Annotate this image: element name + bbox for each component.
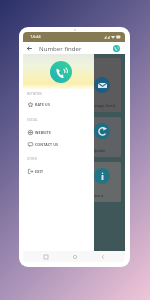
button[interactable]: Recents — [40, 251, 51, 262]
staticText: 14:44 — [30, 34, 41, 40]
button[interactable]: Home — [69, 251, 80, 262]
staticText: About — [92, 193, 104, 198]
staticText: OTHER — [27, 157, 38, 161]
staticText: Number finder — [39, 44, 82, 52]
button[interactable]: CONTACT US — [23, 138, 94, 150]
staticText: RATE US — [35, 102, 50, 107]
button[interactable]: Back — [23, 42, 35, 54]
staticText: EXIT — [35, 169, 44, 174]
staticText: Update — [92, 148, 106, 153]
staticText: NETWORK — [27, 92, 42, 96]
staticText: WEBSITE — [35, 130, 51, 135]
button[interactable]: Call — [113, 45, 120, 52]
staticText: essage Send — [92, 103, 115, 108]
button[interactable]: Update — [91, 117, 121, 157]
button[interactable]: essage Send — [91, 58, 121, 112]
button[interactable]: EXIT — [23, 165, 94, 177]
staticText: CONTACT US — [35, 142, 59, 147]
button[interactable]: RATE US — [23, 98, 94, 110]
button[interactable]: About — [91, 162, 121, 202]
staticText: SOCIAL — [27, 118, 38, 122]
button[interactable]: Back — [97, 251, 108, 262]
button[interactable]: WEBSITE — [23, 126, 94, 138]
